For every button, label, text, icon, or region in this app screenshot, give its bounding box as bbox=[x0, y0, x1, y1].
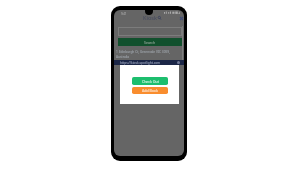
staticText: Check Out bbox=[142, 79, 159, 84]
button[interactable] bbox=[118, 27, 182, 36]
staticText: Search bbox=[144, 40, 156, 45]
staticText: https://kiosk.spotlight.com bbox=[120, 61, 161, 65]
button[interactable]: Close dialog bbox=[177, 61, 180, 64]
staticText: 9:41 bbox=[121, 12, 127, 16]
staticText: 1 Edinburgh Ct, Greenvale VIC 3059, Aust… bbox=[116, 50, 170, 58]
staticText: Kiosk bbox=[143, 14, 157, 22]
button[interactable]: Close bbox=[178, 15, 184, 21]
staticText: Add Book bbox=[142, 88, 158, 93]
button[interactable]: Add Book bbox=[132, 87, 168, 94]
button[interactable]: Check Out bbox=[132, 77, 168, 85]
button[interactable]: Search bbox=[118, 38, 182, 46]
